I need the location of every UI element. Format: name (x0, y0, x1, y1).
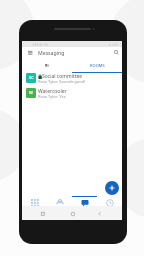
button[interactable]: Search (110, 47, 122, 58)
staticText: SC (29, 75, 34, 81)
button[interactable]: Recent apps (97, 211, 103, 217)
staticText: Messaging (38, 49, 65, 56)
staticText: W (29, 90, 33, 96)
staticText: Rose Tyler: Sounds good! (38, 79, 86, 84)
button[interactable]: Recent (97, 192, 122, 206)
button[interactable]: Start new conversation (105, 181, 119, 195)
staticText: Social committee (42, 73, 83, 80)
button[interactable]: Apps (22, 192, 47, 206)
staticText: Rose Tyler: Yes (38, 94, 66, 99)
button[interactable]: Contacts (47, 192, 72, 206)
button[interactable]: SC (22, 71, 122, 86)
button[interactable]: Home (70, 211, 76, 217)
button[interactable]: W (22, 86, 122, 101)
button[interactable]: Back (40, 211, 46, 217)
staticText: Watercooler (38, 88, 67, 95)
button[interactable]: Open navigation menu (22, 47, 38, 58)
staticText: ROOMS (90, 63, 105, 68)
button[interactable]: Messages (72, 192, 97, 206)
button[interactable]: ROOMS (72, 58, 122, 73)
button[interactable]: Chats tab (22, 58, 72, 73)
